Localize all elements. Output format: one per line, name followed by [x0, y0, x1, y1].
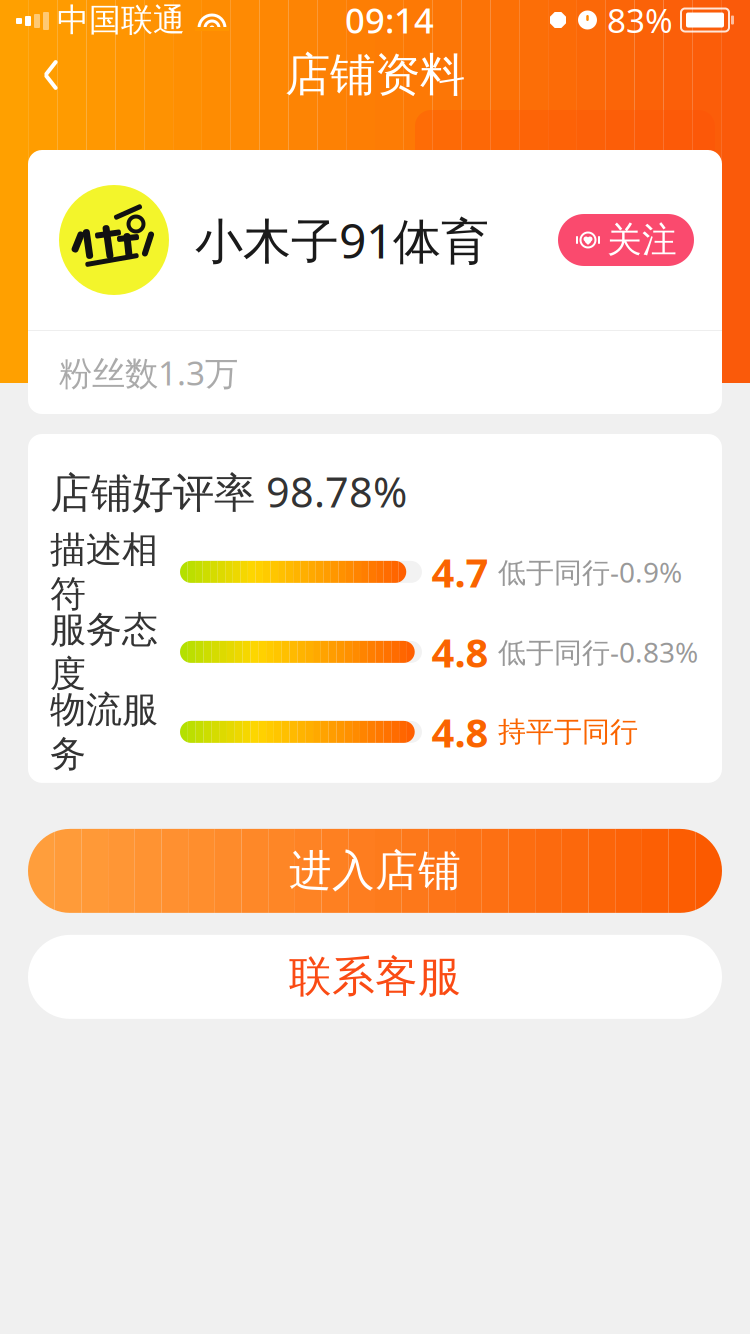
button[interactable]: 返回 [16, 45, 86, 105]
staticText: 09:14 [345, 0, 434, 43]
staticText: 中国联通 [57, 0, 185, 40]
staticText: 关注 [607, 219, 677, 261]
staticText: 粉丝数1.3万 [59, 350, 238, 395]
staticText: 持平于同行 [498, 715, 638, 749]
staticText: 店铺资料 [285, 47, 465, 103]
staticText: 进入店铺 [289, 845, 461, 897]
staticText: 4.8 [431, 705, 488, 758]
staticText: 4.8 [431, 625, 488, 678]
staticText: 店铺好评率 98.78% [50, 464, 407, 519]
staticText: 4.7 [431, 545, 488, 598]
staticText: 物流服务 [50, 688, 158, 776]
staticText: 联系客服 [289, 951, 461, 1003]
staticText: 小木子91体育 [195, 208, 489, 272]
staticText: 低于同行-0.83% [498, 633, 698, 670]
button[interactable]: 进入店铺 [28, 829, 722, 913]
button[interactable]: 联系客服 [28, 935, 722, 1019]
staticText: 描述相符 [50, 528, 158, 616]
staticText: 低于同行-0.9% [498, 553, 682, 590]
staticText: 服务态度 [50, 608, 158, 696]
staticText: 83% [607, 0, 673, 42]
button[interactable]: 关注 [558, 214, 694, 266]
